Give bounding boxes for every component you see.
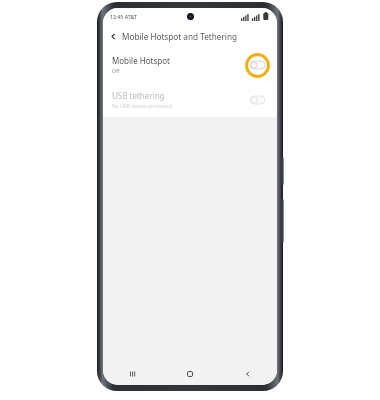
button[interactable]: Mobile Hotspot switch (244, 52, 270, 78)
button[interactable]: Home (161, 363, 219, 385)
staticText: Off (112, 68, 120, 75)
staticText: No USB device connected (112, 103, 172, 110)
staticText: Mobile Hotspot and Tethering (122, 31, 237, 42)
button[interactable]: USB tethering (103, 82, 277, 117)
button[interactable]: Back (106, 29, 120, 43)
button[interactable]: Recent apps (103, 363, 161, 385)
staticText: Mobile Hotspot (112, 55, 170, 66)
button[interactable]: USB tethering switch (244, 87, 270, 113)
staticText: USB tethering (112, 90, 165, 101)
button[interactable]: Back (219, 363, 277, 385)
staticText: 12:45 AT&T (110, 13, 137, 20)
button[interactable]: Mobile Hotspot (103, 47, 277, 82)
